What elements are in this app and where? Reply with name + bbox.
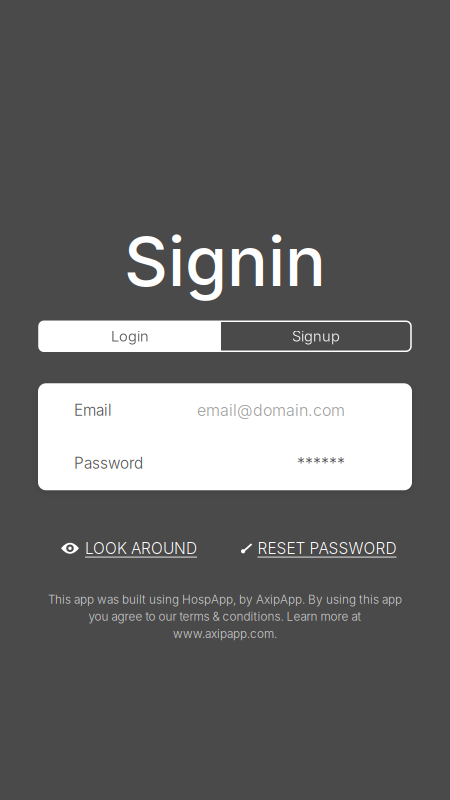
staticText: email@domain.com: [197, 401, 345, 420]
staticText: Signin: [124, 220, 326, 302]
staticText: RESET PASSWORD: [257, 539, 396, 558]
staticText: ******: [297, 454, 345, 473]
staticText: you agree to our terms & conditions. Lea…: [88, 609, 361, 624]
staticText: Email: [74, 401, 112, 420]
staticText: www.axipapp.com.: [173, 627, 277, 641]
button[interactable]: LOOK AROUND: [61, 539, 195, 558]
staticText: LOOK AROUND: [85, 539, 197, 558]
staticText: Login: [111, 327, 149, 345]
staticText: Password: [74, 454, 143, 473]
button[interactable]: Signup: [221, 321, 411, 351]
staticText: Signup: [292, 327, 340, 345]
staticText: This app was built using HospApp, by Axi…: [48, 592, 402, 606]
button[interactable]: Login: [39, 321, 221, 351]
button[interactable]: RESET PASSWORD: [240, 539, 395, 558]
